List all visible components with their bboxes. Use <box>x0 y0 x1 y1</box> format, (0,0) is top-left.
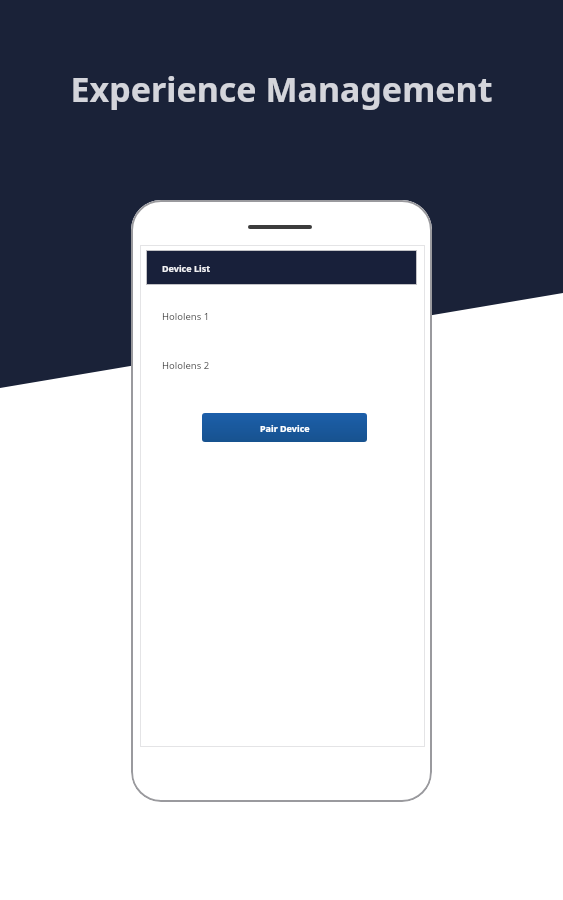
button[interactable]: Pair Device <box>202 413 367 442</box>
staticText: Device List <box>162 262 211 274</box>
button[interactable]: Device List <box>146 250 417 285</box>
staticText: Pair Device <box>260 422 310 434</box>
staticText: Hololens 2 <box>162 359 210 372</box>
staticText: Hololens 1 <box>162 310 210 323</box>
staticText: Experience Management <box>0 66 563 112</box>
button[interactable]: Hololens 2 <box>146 351 417 379</box>
button[interactable]: Hololens 1 <box>146 302 417 330</box>
